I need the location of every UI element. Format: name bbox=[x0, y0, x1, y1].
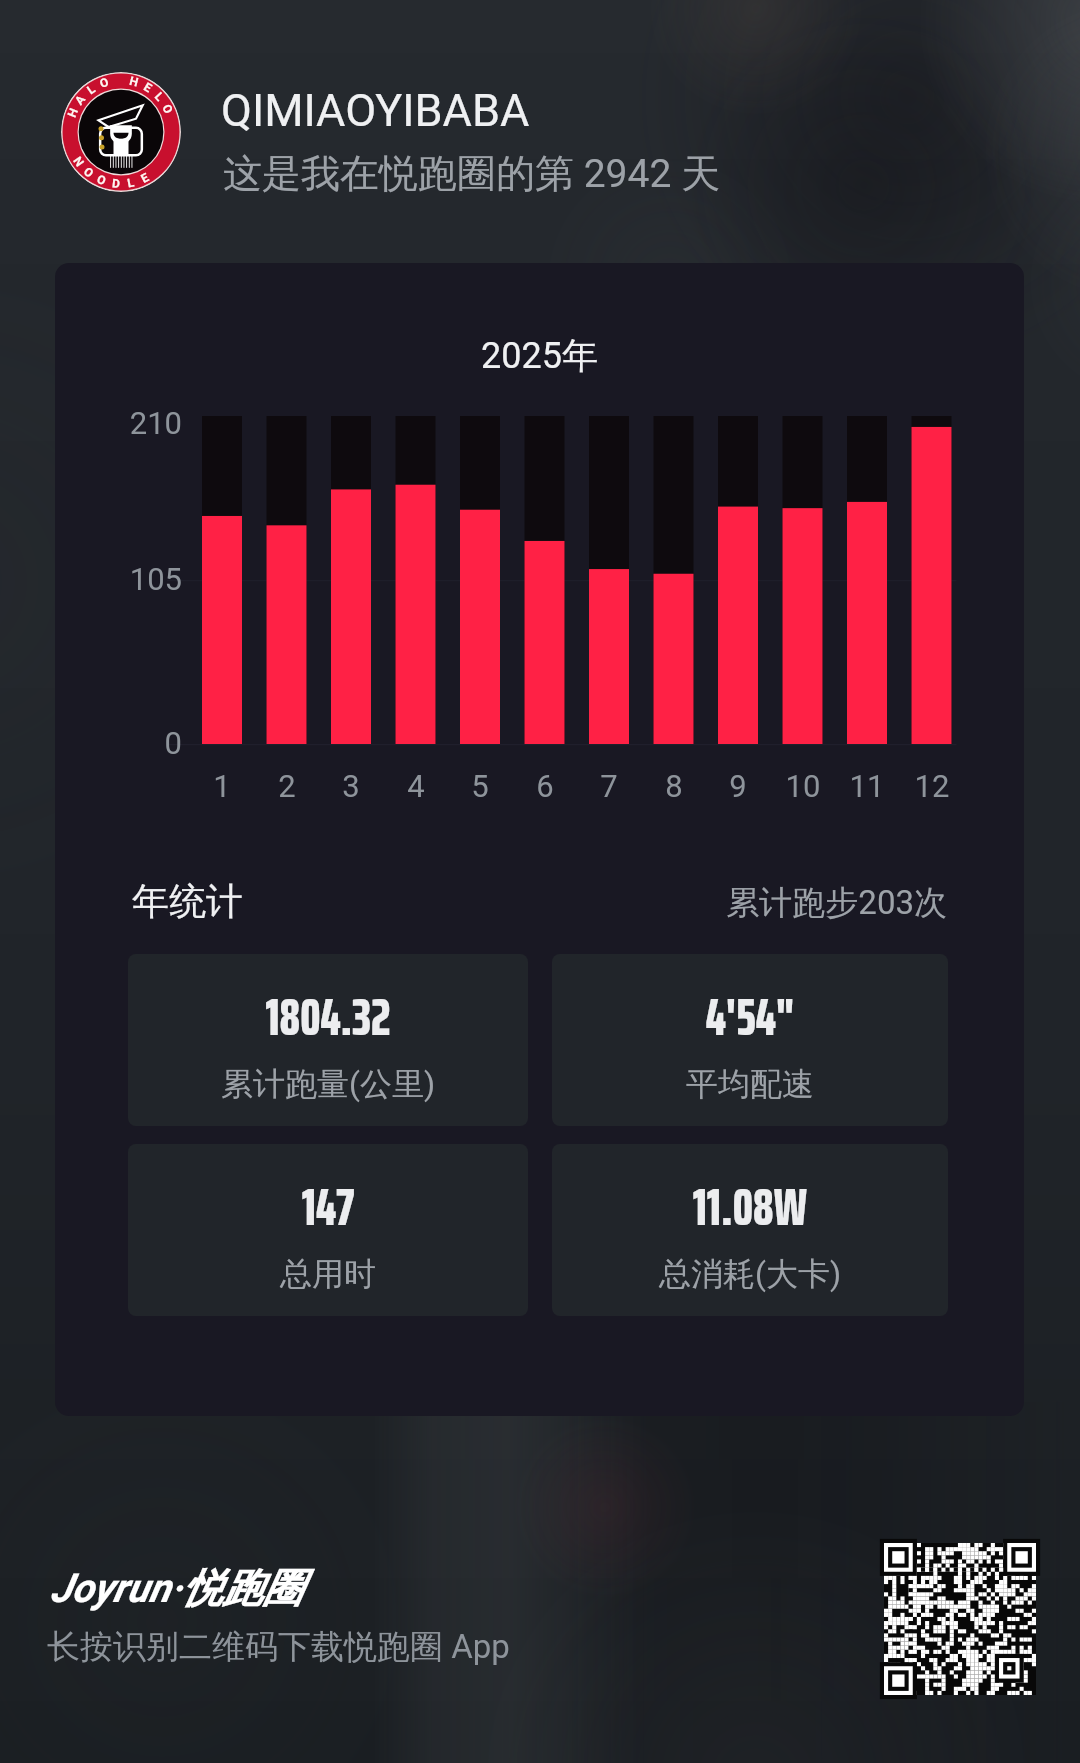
button[interactable]: QIMIAOYIBABA bbox=[221, 84, 741, 138]
staticText: 总消耗(大卡) bbox=[552, 1254, 948, 1294]
staticText: 9 bbox=[706, 768, 770, 804]
staticText: 长按识别二维码下载悦跑圈 App bbox=[47, 1626, 510, 1668]
staticText: 累计跑步203次 bbox=[615, 882, 947, 924]
button[interactable]: 1804.32 bbox=[128, 954, 528, 1126]
staticText: 8 bbox=[642, 768, 706, 804]
staticText: 累计跑量(公里) bbox=[128, 1064, 528, 1104]
staticText: 105 bbox=[55, 561, 182, 597]
button[interactable]: 11.08W bbox=[552, 1144, 948, 1316]
staticText: 4 bbox=[384, 768, 448, 804]
staticText: 这是我在悦跑圈的第 2942 天 bbox=[223, 149, 721, 197]
staticText: 12 bbox=[900, 768, 964, 804]
staticText: 3 bbox=[319, 768, 383, 804]
button[interactable]: 这是我在悦跑圈的第 2942 天 bbox=[223, 149, 743, 197]
staticText: 210 bbox=[55, 405, 182, 441]
staticText: 4'54" bbox=[552, 977, 948, 1057]
button[interactable]: Profile avatar bbox=[61, 72, 181, 192]
staticText: 10 bbox=[771, 768, 835, 804]
staticText: 5 bbox=[448, 768, 512, 804]
staticText: 11 bbox=[835, 768, 899, 804]
staticText: 平均配速 bbox=[552, 1064, 948, 1104]
button[interactable]: 147 bbox=[128, 1144, 528, 1316]
staticText: 1 bbox=[190, 768, 254, 804]
staticText: 0 bbox=[55, 725, 182, 761]
staticText: 7 bbox=[577, 768, 641, 804]
staticText: 2 bbox=[255, 768, 319, 804]
staticText: 6 bbox=[513, 768, 577, 804]
staticText: 147 bbox=[128, 1167, 528, 1247]
staticText: 2025年 bbox=[55, 333, 1024, 378]
staticText: 年统计 bbox=[132, 878, 243, 925]
button[interactable]: 4'54" bbox=[552, 954, 948, 1126]
staticText: 11.08W bbox=[552, 1167, 948, 1247]
staticText: Joyrun·悦跑圈 bbox=[50, 1563, 303, 1613]
staticText: 总用时 bbox=[128, 1254, 528, 1294]
staticText: 1804.32 bbox=[128, 977, 528, 1057]
staticText: QIMIAOYIBABA bbox=[221, 84, 530, 137]
button[interactable]: QR code to download the app bbox=[884, 1543, 1036, 1695]
